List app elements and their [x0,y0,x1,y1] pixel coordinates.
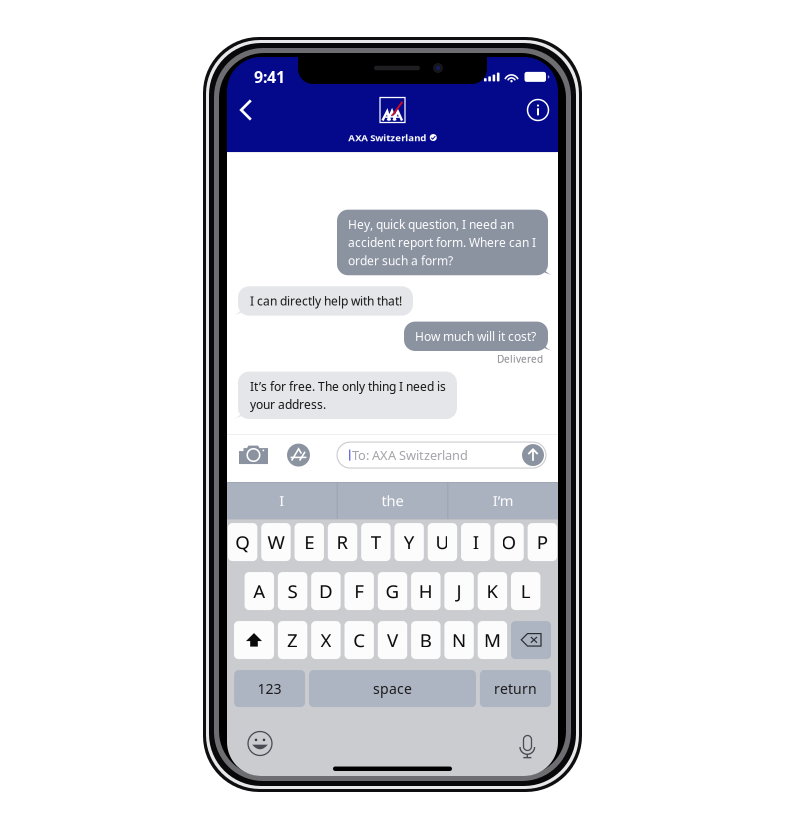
button[interactable]: H [411,572,440,610]
staticText: V [387,627,398,653]
staticText: I can directly help with that! [250,293,402,309]
staticText: F [354,578,364,604]
button[interactable]: Y [394,523,424,561]
staticText: It’s for free. The only thing I need is … [250,378,446,413]
staticText: the [381,491,403,511]
staticText: I [473,529,479,555]
button[interactable]: Delete [511,621,551,659]
staticText: Y [404,529,415,555]
staticText: space [373,679,412,698]
staticText: H [419,578,433,604]
button[interactable]: the [338,482,447,519]
staticText: I [279,491,284,511]
staticText: W [267,529,284,555]
button[interactable]: D [311,572,341,610]
button[interactable]: Q [228,523,257,561]
button[interactable]: P [528,523,557,561]
staticText: X [320,627,331,653]
button[interactable]: I’m [448,482,558,519]
button[interactable]: S [278,572,307,610]
staticText: E [304,529,314,555]
button[interactable]: J [444,572,474,610]
button[interactable]: I [227,482,337,519]
button[interactable]: Emoji [248,731,272,755]
staticText: AXA Switzerland [348,131,426,144]
button[interactable]: A [245,572,274,610]
button[interactable]: B [411,621,440,659]
button[interactable]: Send [522,444,544,466]
staticText: P [537,529,548,555]
staticText: J [457,578,462,604]
staticText: Z [287,627,298,653]
button[interactable]: V [378,621,407,659]
button[interactable]: return [480,670,551,707]
staticText: D [319,578,333,604]
staticText: 9:41 [254,66,285,88]
staticText: L [521,578,531,604]
staticText: T [371,529,381,555]
button[interactable]: X [311,621,341,659]
button[interactable]: I [461,523,490,561]
button[interactable]: R [328,523,357,561]
button[interactable]: iMessage apps [285,444,312,467]
button[interactable]: W [261,523,291,561]
button[interactable]: K [478,572,507,610]
staticText: return [494,679,537,698]
button[interactable]: L [511,572,540,610]
button[interactable]: U [428,523,457,561]
button[interactable]: E [294,523,324,561]
button[interactable]: Z [278,621,307,659]
button[interactable]: Dictate [520,732,535,755]
button[interactable]: Take photo [239,446,268,465]
button[interactable]: M [478,621,507,659]
staticText: N [452,627,466,653]
staticText: U [435,529,449,555]
staticText: A [253,578,265,604]
button[interactable]: Conversation info [524,95,552,125]
staticText: G [385,578,399,604]
button[interactable]: space [309,670,476,707]
staticText: B [420,627,432,653]
button[interactable]: G [378,572,407,610]
staticText: Hey, quick question, I need an accident … [348,216,536,269]
staticText: How much will it cost? [415,328,536,344]
staticText: C [353,627,365,653]
staticText: K [486,578,498,604]
button[interactable]: Shift [234,621,274,659]
button[interactable]: O [494,523,524,561]
button[interactable]: F [344,572,374,610]
staticText: 123 [258,679,282,698]
button[interactable]: T [361,523,390,561]
button[interactable]: C [344,621,374,659]
staticText: Delivered [497,352,543,366]
button[interactable]: Back [232,95,260,125]
staticText: R [336,529,348,555]
button[interactable]: N [444,621,474,659]
staticText: Q [235,529,250,555]
staticText: S [288,578,298,604]
staticText: O [502,529,517,555]
staticText: I’m [493,491,514,511]
button[interactable]: 123 [234,670,305,707]
staticText: To: AXA Switzerland [352,446,468,464]
staticText: M [484,627,501,653]
